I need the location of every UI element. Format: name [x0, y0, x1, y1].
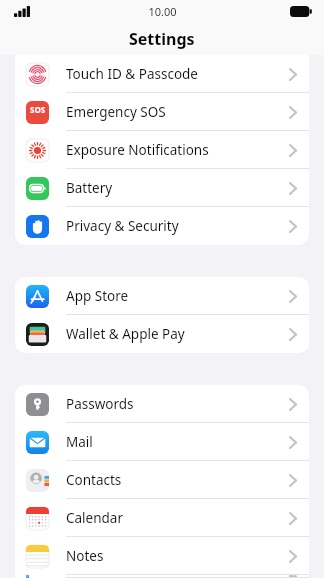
- button[interactable]: App Store: [15, 277, 309, 315]
- button[interactable]: Emergency SOS: [15, 93, 309, 131]
- staticText: Reminders: [66, 575, 135, 578]
- staticText: App Store: [66, 287, 129, 305]
- button[interactable]: Mail: [15, 423, 309, 461]
- staticText: Battery: [66, 179, 113, 197]
- staticText: Mail: [66, 433, 93, 451]
- staticText: Emergency SOS: [66, 103, 166, 121]
- staticText: SOS: [30, 104, 46, 115]
- staticText: Exposure Notifications: [66, 141, 209, 159]
- button[interactable]: Touch ID & Passcode: [15, 55, 309, 93]
- staticText: Touch ID & Passcode: [66, 65, 198, 83]
- staticText: 10.00: [148, 4, 177, 19]
- staticText: Notes: [66, 547, 104, 565]
- staticText: Settings: [129, 28, 195, 50]
- button[interactable]: Reminders: [15, 575, 309, 578]
- staticText: Contacts: [66, 471, 122, 489]
- button[interactable]: Privacy & Security: [15, 207, 309, 245]
- button[interactable]: Exposure Notifications: [15, 131, 309, 169]
- button[interactable]: Calendar: [15, 499, 309, 537]
- staticText: Passwords: [66, 395, 134, 413]
- button[interactable]: Passwords: [15, 385, 309, 423]
- button[interactable]: Contacts: [15, 461, 309, 499]
- button[interactable]: Battery: [15, 169, 309, 207]
- button[interactable]: Notes: [15, 537, 309, 575]
- staticText: Wallet & Apple Pay: [66, 325, 185, 343]
- button[interactable]: Wallet & Apple Pay: [15, 315, 309, 353]
- staticText: Calendar: [66, 509, 123, 527]
- staticText: Privacy & Security: [66, 217, 179, 235]
